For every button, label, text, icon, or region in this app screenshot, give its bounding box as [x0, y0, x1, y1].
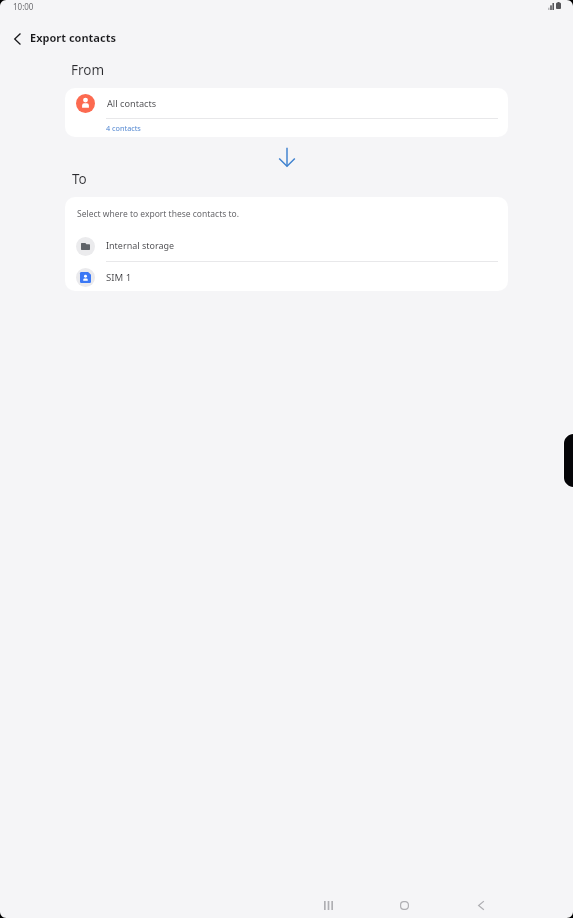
button[interactable]: All contacts	[65, 88, 508, 118]
button[interactable]: Recents	[313, 890, 344, 918]
staticText: Select where to export these contacts to…	[77, 208, 240, 220]
staticText: Export contacts	[30, 30, 116, 45]
button[interactable]: Internal storage	[65, 221, 508, 260]
button[interactable]: SIM 1	[65, 262, 508, 291]
button[interactable]: Back	[465, 890, 496, 918]
staticText: 4 contacts	[106, 123, 141, 133]
button[interactable]: Home	[389, 890, 420, 918]
button[interactable]: Edge panel handle	[564, 433, 573, 488]
staticText: 10:00	[13, 1, 34, 12]
staticText: All contacts	[107, 97, 157, 110]
staticText: From	[71, 61, 105, 79]
staticText: To	[72, 170, 87, 188]
button[interactable]: Navigate up	[5, 27, 29, 51]
staticText: SIM 1	[106, 271, 132, 284]
staticText: Internal storage	[106, 239, 175, 251]
